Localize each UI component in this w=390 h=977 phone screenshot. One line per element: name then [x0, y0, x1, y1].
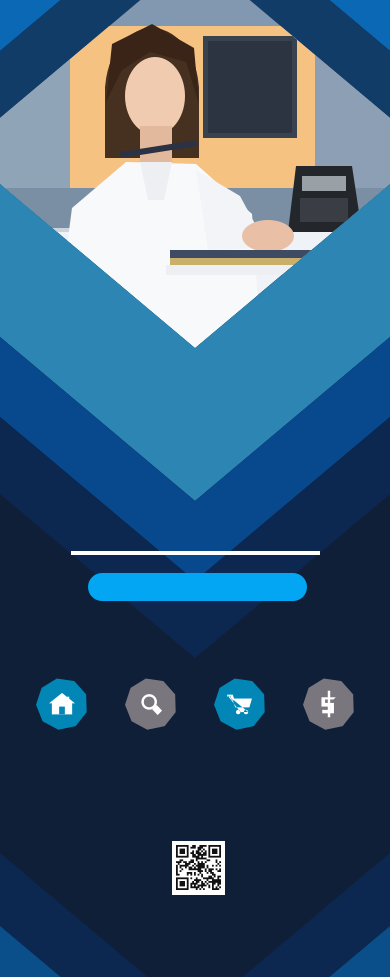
button[interactable]: Payments	[0, 0, 390, 977]
button[interactable]: Continue	[0, 0, 390, 977]
button[interactable]: Home	[0, 0, 390, 977]
button[interactable]: Cart	[0, 0, 390, 977]
button[interactable]: Search	[0, 0, 390, 977]
